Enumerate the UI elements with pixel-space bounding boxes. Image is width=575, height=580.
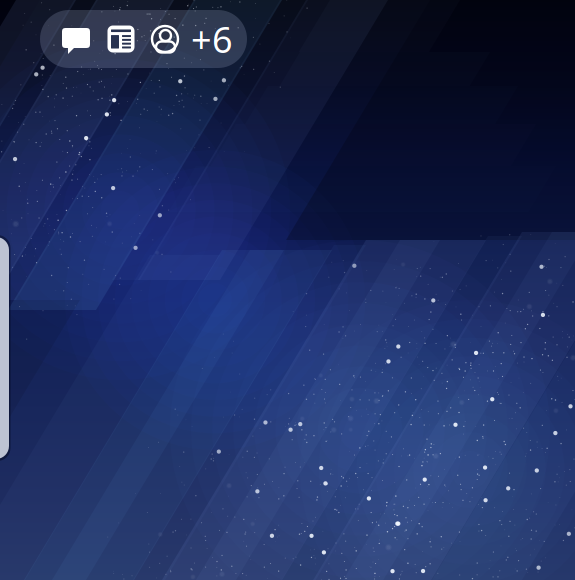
button[interactable]: Messages — [59, 22, 93, 56]
button[interactable]: News — [104, 22, 138, 56]
button[interactable]: Account — [148, 22, 182, 56]
button[interactable]: +6 — [191, 15, 233, 63]
staticText: +6 — [191, 15, 233, 63]
